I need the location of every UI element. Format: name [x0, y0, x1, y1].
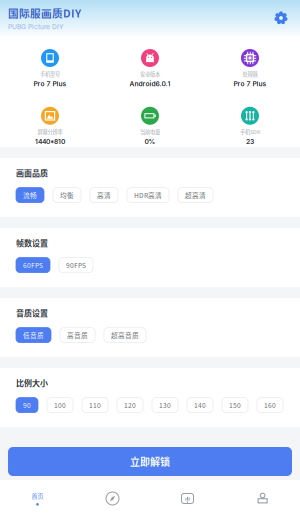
- staticText: Pro 7 Plus: [233, 80, 266, 88]
- staticText: 国际服画质DIY: [8, 5, 81, 21]
- button[interactable]: 超高音质: [104, 328, 146, 343]
- staticText: 当前电量: [140, 128, 160, 135]
- button[interactable]: 120: [117, 398, 143, 413]
- staticText: 130: [159, 400, 171, 410]
- staticText: 140: [194, 400, 206, 410]
- button[interactable]: 低音质: [16, 328, 51, 343]
- staticText: PUBG Picture DIY: [8, 23, 64, 31]
- staticText: 处理器: [242, 70, 257, 78]
- button[interactable]: 90FPS: [59, 258, 93, 273]
- staticText: 手机型号: [40, 70, 60, 78]
- button[interactable]: Settings: [273, 10, 289, 26]
- staticText: HDR高清: [134, 190, 162, 200]
- staticText: Pro 7 Plus: [33, 80, 66, 88]
- button[interactable]: 110: [82, 398, 108, 413]
- button[interactable]: 首页: [0, 480, 75, 517]
- button[interactable]: 60FPS: [16, 258, 50, 273]
- staticText: 安卓版本: [140, 70, 160, 78]
- button[interactable]: 高清: [90, 188, 118, 203]
- staticText: 高清: [97, 190, 111, 200]
- staticText: 120: [124, 400, 136, 410]
- staticText: 高音质: [67, 330, 88, 340]
- staticText: 立即解锁: [130, 454, 170, 469]
- button[interactable]: 130: [152, 398, 178, 413]
- staticText: 160: [264, 400, 276, 410]
- staticText: 帧数设置: [16, 237, 48, 249]
- staticText: 音质设置: [16, 307, 48, 319]
- button[interactable]: 100: [47, 398, 73, 413]
- staticText: 1440*810: [35, 137, 65, 146]
- staticText: 均衡: [60, 190, 74, 200]
- staticText: 150: [229, 400, 241, 410]
- staticText: 首页: [31, 491, 43, 500]
- button[interactable]: 立即解锁: [8, 447, 292, 476]
- button[interactable]: 流畅: [16, 188, 44, 203]
- button[interactable]: 150: [222, 398, 248, 413]
- staticText: 比例大小: [16, 377, 48, 389]
- button[interactable]: 90: [16, 398, 38, 413]
- staticText: 23: [246, 137, 254, 146]
- button[interactable]: 140: [187, 398, 213, 413]
- staticText: 低音质: [23, 330, 44, 340]
- button[interactable]: 均衡: [53, 188, 81, 203]
- staticText: 100: [54, 400, 66, 410]
- staticText: 超高清: [185, 190, 206, 200]
- button[interactable]: 160: [257, 398, 283, 413]
- button[interactable]: Profile: [225, 480, 300, 517]
- staticText: 90: [23, 400, 31, 410]
- staticText: 超高音质: [111, 330, 139, 340]
- staticText: 手机SDK: [240, 128, 260, 135]
- staticText: 0%: [144, 137, 155, 146]
- staticText: 110: [89, 400, 101, 410]
- button[interactable]: 超高清: [178, 188, 213, 203]
- button[interactable]: Explore: [75, 480, 150, 517]
- button[interactable]: Activity: [150, 480, 225, 517]
- staticText: 流畅: [23, 190, 37, 200]
- staticText: 90FPS: [66, 260, 86, 270]
- staticText: Android6.0.1: [129, 80, 170, 88]
- staticText: 屏幕分辨率: [37, 128, 62, 135]
- button[interactable]: HDR高清: [127, 188, 169, 203]
- staticText: 60FPS: [23, 260, 43, 270]
- staticText: 画面品质: [16, 167, 48, 179]
- button[interactable]: 高音质: [60, 328, 95, 343]
